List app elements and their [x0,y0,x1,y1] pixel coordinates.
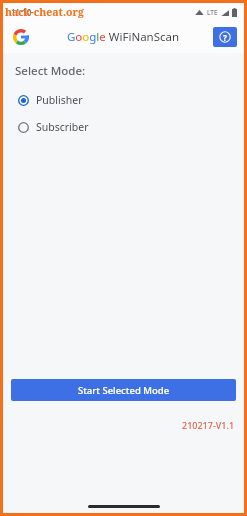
staticText: 11:10 [11,7,32,18]
staticText: Publisher [36,93,83,107]
staticText: Google WiFiNanScan [67,29,180,45]
staticText: ? [223,32,227,43]
staticText: Select Mode: [15,63,86,79]
staticText: Start Selected Mode [78,384,170,397]
button[interactable]: Start Selected Mode [11,379,236,401]
button[interactable]: Help [213,27,237,47]
button[interactable]: Subscriber [3,116,244,138]
staticText: LTE [207,8,218,17]
staticText: Subscriber [36,120,89,134]
staticText: 210217-V1.1 [182,419,235,431]
staticText: hack-cheat.org [5,5,84,19]
button[interactable]: Publisher [3,89,244,111]
button[interactable]: Google [11,27,31,47]
